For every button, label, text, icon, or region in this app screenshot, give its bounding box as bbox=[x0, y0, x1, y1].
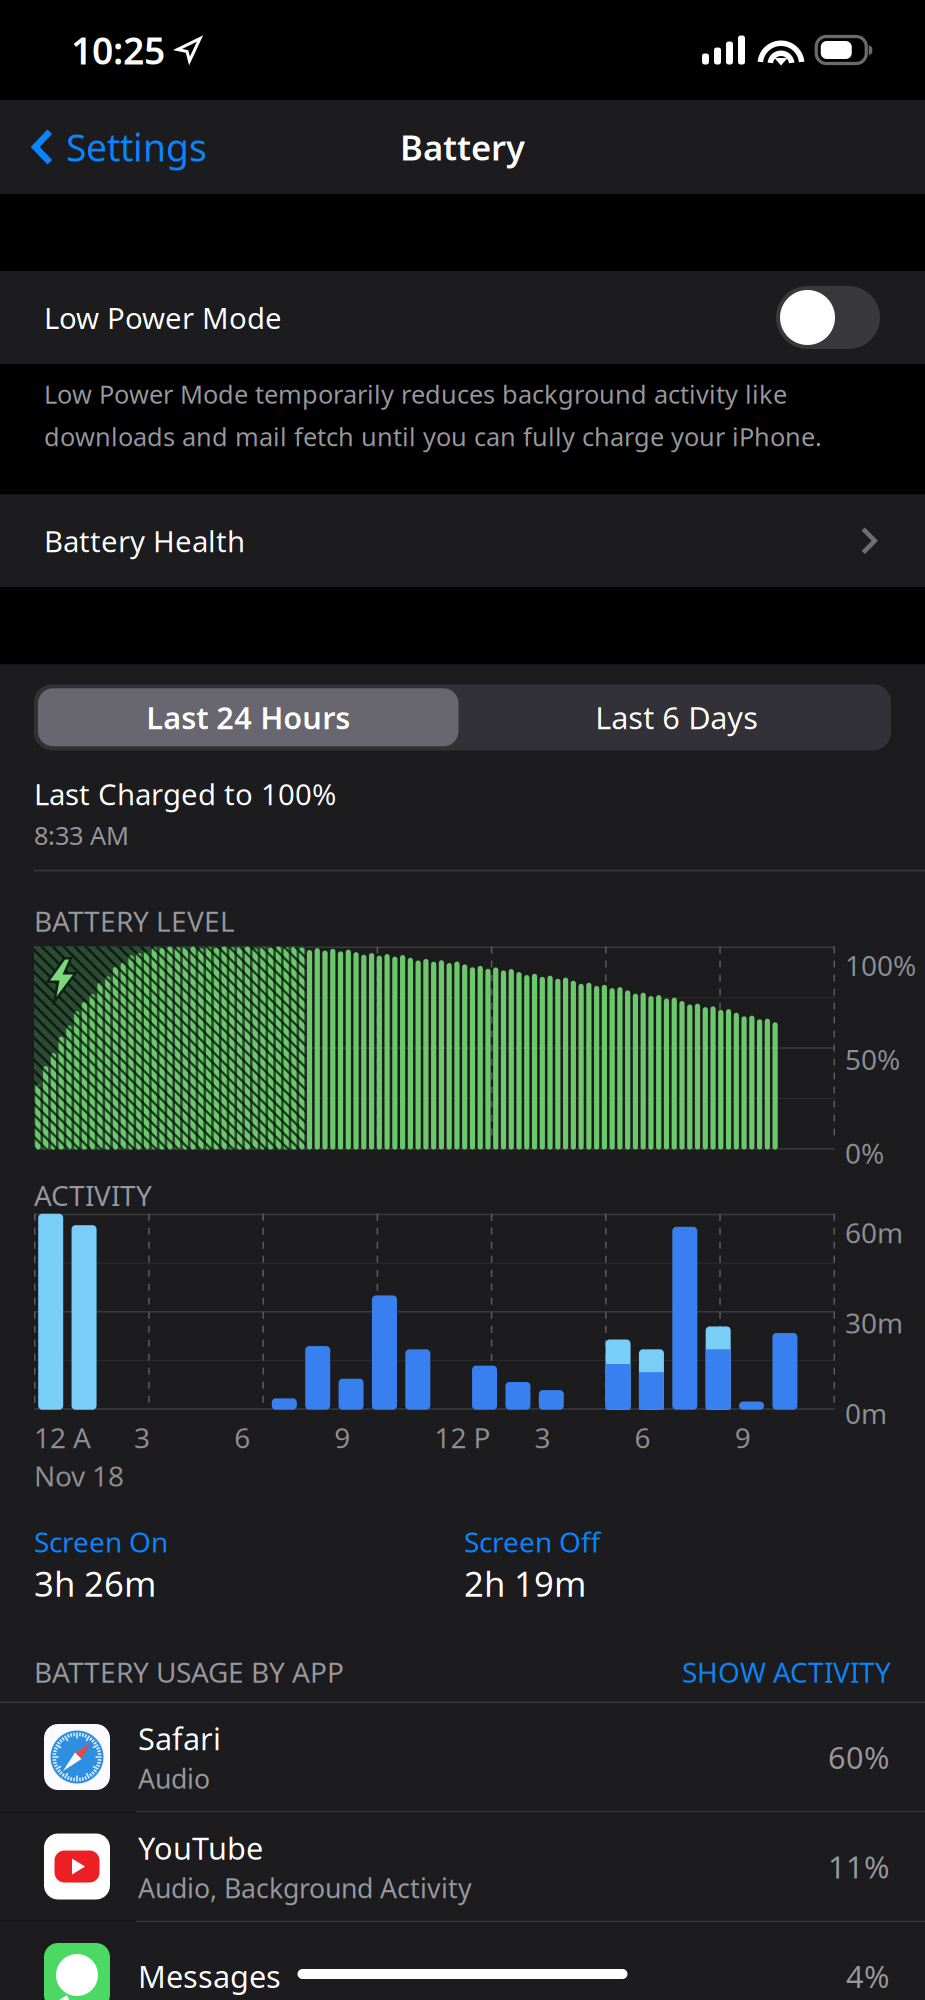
staticText: Last 6 Days bbox=[595, 697, 758, 738]
staticText: 0% bbox=[845, 1134, 884, 1172]
staticText: Screen Off bbox=[464, 1523, 600, 1560]
staticText: Low Power Mode temporarily reduces backg… bbox=[44, 377, 787, 411]
staticText: Settings bbox=[66, 122, 207, 172]
staticText: BATTERY LEVEL bbox=[34, 902, 235, 940]
staticText: 3 bbox=[534, 1419, 550, 1456]
staticText: Audio bbox=[138, 1761, 210, 1796]
button[interactable]: Settings bbox=[0, 100, 225, 194]
staticText: 11% bbox=[828, 1846, 889, 1887]
staticText: 30m bbox=[845, 1304, 903, 1341]
staticText: 9 bbox=[735, 1419, 751, 1456]
staticText: 8:33 AM bbox=[34, 818, 129, 852]
staticText: Battery Health bbox=[44, 521, 245, 560]
button[interactable]: Low Power Mode bbox=[0, 271, 925, 364]
staticText: 60m bbox=[845, 1214, 903, 1251]
button[interactable]: SHOW ACTIVITY bbox=[682, 1653, 891, 1690]
button[interactable]: YouTube bbox=[0, 1812, 925, 1920]
staticText: SHOW ACTIVITY bbox=[682, 1653, 891, 1690]
staticText: 3h 26m bbox=[34, 1560, 156, 1606]
staticText: Battery bbox=[400, 124, 525, 170]
staticText: 6 bbox=[635, 1419, 651, 1456]
staticText: 10:25 bbox=[71, 25, 165, 75]
button[interactable]: Last 24 Hours bbox=[34, 684, 462, 750]
staticText: 60% bbox=[828, 1737, 889, 1777]
staticText: 3 bbox=[134, 1419, 150, 1456]
staticText: Safari bbox=[138, 1718, 221, 1759]
staticText: Last 24 Hours bbox=[146, 697, 350, 738]
staticText: YouTube bbox=[138, 1827, 263, 1868]
staticText: Nov 18 bbox=[34, 1457, 124, 1494]
staticText: Screen On bbox=[34, 1523, 168, 1560]
staticText: Low Power Mode bbox=[44, 298, 282, 337]
staticText: 0m bbox=[845, 1395, 887, 1432]
button[interactable]: Battery Health bbox=[0, 494, 925, 587]
button[interactable]: Messages bbox=[0, 1922, 925, 2000]
button[interactable]: Safari bbox=[0, 1703, 925, 1811]
staticText: Last Charged to 100% bbox=[34, 774, 336, 813]
staticText: 9 bbox=[334, 1419, 350, 1456]
staticText: Messages bbox=[138, 1956, 281, 1996]
staticText: Audio, Background Activity bbox=[138, 1870, 472, 1906]
staticText: 12 A bbox=[34, 1419, 91, 1456]
staticText: BATTERY USAGE BY APP bbox=[34, 1653, 344, 1690]
staticText: 4% bbox=[846, 1956, 889, 1996]
staticText: 12 P bbox=[434, 1419, 490, 1456]
staticText: downloads and mail fetch until you can f… bbox=[44, 420, 822, 453]
staticText: 2h 19m bbox=[464, 1560, 586, 1606]
staticText: ACTIVITY bbox=[34, 1177, 152, 1214]
staticText: 50% bbox=[845, 1040, 900, 1078]
staticText: 100% bbox=[845, 947, 916, 984]
staticText: 6 bbox=[234, 1419, 250, 1456]
button[interactable]: Last 6 Days bbox=[462, 684, 891, 750]
